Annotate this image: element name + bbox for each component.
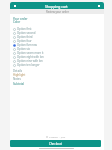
staticText: Checkout	[49, 142, 62, 146]
button[interactable]: Option seven more it	[13, 51, 104, 55]
staticText: Option nine with lon	[17, 59, 43, 63]
staticText: Option seven more it	[17, 51, 44, 55]
staticText: Your order	[13, 17, 28, 21]
button[interactable]: Option five now	[13, 43, 104, 47]
button[interactable]: Option nine with lon	[13, 59, 104, 63]
staticText: Details	[13, 69, 22, 73]
staticText: Option four	[17, 39, 32, 43]
button[interactable]: Checkout	[10, 140, 101, 147]
button[interactable]: Option first	[13, 27, 104, 31]
staticText: Option third	[17, 35, 33, 39]
staticText: Option six	[17, 47, 30, 51]
button[interactable]: Option six	[13, 47, 104, 51]
staticText: Highlight	[13, 73, 26, 77]
staticText: 3 items · $24	[49, 135, 66, 138]
button[interactable]: Option four	[13, 39, 104, 43]
button[interactable]: Option eight with lon	[13, 55, 104, 59]
staticText: Option eight with lon	[17, 55, 44, 59]
staticText: Option second	[17, 31, 36, 35]
staticText: Color	[13, 20, 21, 24]
staticText: Option ten longer	[17, 63, 40, 67]
staticText: Option five now	[17, 43, 37, 47]
staticText: Notes	[13, 77, 21, 81]
staticText: Shopping cart	[45, 4, 68, 9]
button[interactable]: Option second	[13, 31, 104, 35]
button[interactable]: Option third	[13, 35, 104, 39]
staticText: Subtotal	[13, 82, 24, 86]
staticText: Option first	[17, 27, 32, 31]
staticText: Review your order	[46, 10, 69, 14]
button[interactable]: Option ten longer	[13, 63, 104, 67]
button[interactable]: More options	[97, 4, 101, 8]
button[interactable]: Navigate up	[13, 4, 17, 8]
